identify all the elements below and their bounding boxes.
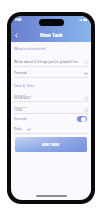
staticText: Reminder [14,117,77,121]
button[interactable]: ADD TASK [15,137,87,152]
staticText: Date & Time [14,83,35,88]
staticText: Write about 5 things you're grateful for [14,59,84,64]
staticText: Daily [14,127,22,131]
staticText: New Task [40,32,63,39]
staticText: 09/08/2021 [14,96,31,100]
staticText: Personal [14,71,84,75]
staticText: 7:00 [15,18,22,22]
staticText: Start Date [14,93,26,96]
staticText: ADD TASK [42,142,60,147]
button[interactable]: Back [12,31,21,40]
staticText: 10:00 [14,108,23,112]
staticText: What is to be done? [14,46,47,51]
button[interactable] [77,116,87,122]
staticText: Alarm Time [14,105,27,108]
